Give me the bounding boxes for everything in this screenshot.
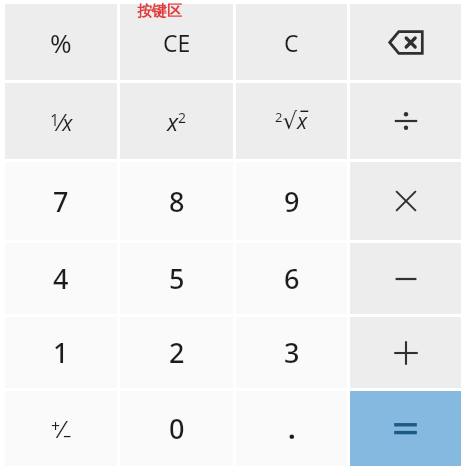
staticText: 6 bbox=[284, 260, 300, 297]
button[interactable]: x squared bbox=[120, 83, 233, 159]
staticText: % bbox=[50, 25, 72, 60]
button[interactable]: 0 bbox=[120, 391, 233, 466]
button[interactable]: 3 bbox=[236, 317, 347, 388]
button[interactable]: Plus bbox=[350, 317, 461, 388]
staticText: +⁄– bbox=[51, 412, 72, 446]
staticText: 4 bbox=[53, 260, 69, 297]
button[interactable]: Plus minus bbox=[5, 391, 117, 466]
button[interactable]: Minus bbox=[350, 243, 461, 314]
button[interactable]: One over x bbox=[5, 83, 117, 159]
button[interactable]: 9 bbox=[236, 162, 347, 240]
staticText: 5 bbox=[169, 260, 185, 297]
button[interactable]: 8 bbox=[120, 162, 233, 240]
staticText: 9 bbox=[284, 183, 300, 220]
button[interactable]: Equals bbox=[350, 391, 461, 466]
button[interactable]: Multiply bbox=[350, 162, 461, 240]
staticText: 2√x̅ bbox=[275, 107, 308, 136]
button[interactable]: C bbox=[236, 4, 347, 80]
button[interactable]: Divide bbox=[350, 83, 461, 159]
staticText: 0 bbox=[169, 410, 185, 447]
staticText: 按键区 bbox=[137, 2, 182, 21]
button[interactable]: 2 bbox=[120, 317, 233, 388]
button[interactable]: 1 bbox=[5, 317, 117, 388]
button[interactable]: 4 bbox=[5, 243, 117, 314]
button[interactable]: 7 bbox=[5, 162, 117, 240]
button[interactable]: CE bbox=[120, 4, 233, 80]
staticText: 1⁄x bbox=[50, 105, 73, 138]
staticText: 7 bbox=[53, 183, 69, 220]
button[interactable]: 5 bbox=[120, 243, 233, 314]
staticText: . bbox=[288, 410, 296, 447]
staticText: C bbox=[284, 27, 299, 58]
staticText: 2 bbox=[169, 334, 185, 371]
button[interactable]: % bbox=[5, 4, 117, 80]
staticText: x2 bbox=[167, 106, 187, 137]
staticText: CE bbox=[163, 27, 191, 58]
staticText: 3 bbox=[284, 334, 300, 371]
button[interactable]: Square root bbox=[236, 83, 347, 159]
staticText: 8 bbox=[169, 183, 185, 220]
button[interactable]: Backspace bbox=[350, 4, 461, 80]
button[interactable]: 6 bbox=[236, 243, 347, 314]
staticText: 1 bbox=[53, 334, 69, 371]
button[interactable]: . bbox=[236, 391, 347, 466]
